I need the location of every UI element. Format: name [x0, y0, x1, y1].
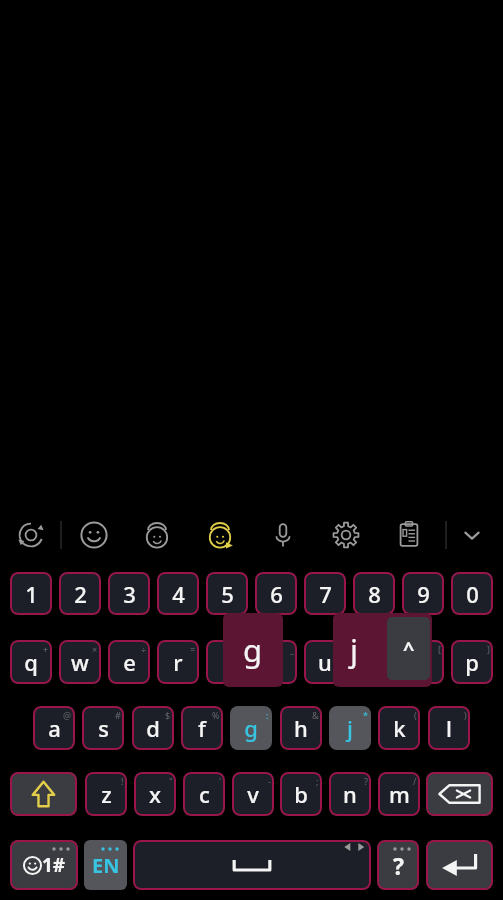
staticText: r: [173, 647, 183, 677]
button[interactable]: j: [329, 706, 371, 750]
button[interactable]: u: [304, 640, 346, 684]
button[interactable]: t: [206, 640, 248, 684]
button[interactable]: 8: [353, 572, 395, 615]
staticText: a: [48, 713, 61, 743]
staticText: k: [393, 713, 406, 743]
button[interactable]: Symbols and emoji: [10, 840, 78, 890]
button[interactable]: Voice input: [251, 508, 314, 562]
button[interactable]: ?: [377, 840, 419, 890]
button[interactable]: s: [82, 706, 124, 750]
staticText: ': [219, 775, 222, 787]
button[interactable]: a: [33, 706, 75, 750]
button[interactable]: q: [10, 640, 52, 684]
button[interactable]: o: [402, 640, 444, 684]
button[interactable]: Stickers: [125, 508, 188, 562]
staticText: 8: [368, 579, 381, 609]
button[interactable]: 7: [304, 572, 346, 615]
button[interactable]: Space: [133, 840, 371, 890]
staticText: z: [101, 779, 112, 809]
staticText: (: [414, 709, 417, 721]
staticText: j: [347, 713, 353, 743]
staticText: 5: [221, 579, 234, 609]
button[interactable]: k: [378, 706, 420, 750]
button[interactable]: 5: [206, 572, 248, 615]
staticText: %: [212, 709, 220, 721]
button[interactable]: f: [181, 706, 223, 750]
button[interactable]: x: [134, 772, 176, 816]
button[interactable]: p: [451, 640, 493, 684]
button[interactable]: 4: [157, 572, 199, 615]
button[interactable]: 3: [108, 572, 150, 615]
button[interactable]: h: [280, 706, 322, 750]
button[interactable]: y: [255, 640, 297, 684]
staticText: !: [121, 775, 124, 787]
staticText: #: [115, 709, 121, 721]
button[interactable]: Avatar: [188, 508, 251, 562]
button[interactable]: b: [280, 772, 322, 816]
button[interactable]: Settings: [314, 508, 377, 562]
staticText: _: [290, 643, 294, 655]
staticText: EN: [92, 852, 120, 879]
button[interactable]: Enter: [426, 840, 493, 890]
staticText: :: [266, 709, 269, 721]
button[interactable]: g: [230, 706, 272, 750]
staticText: d: [146, 713, 160, 743]
button[interactable]: c: [183, 772, 225, 816]
button[interactable]: EN: [84, 840, 127, 890]
staticText: -: [268, 775, 271, 787]
button[interactable]: r: [157, 640, 199, 684]
staticText: w: [71, 647, 89, 677]
staticText: ?: [364, 775, 368, 787]
button[interactable]: Clipboard: [377, 508, 440, 562]
staticText: v: [247, 779, 259, 809]
staticText: 1: [25, 579, 38, 609]
button[interactable]: z: [85, 772, 127, 816]
button[interactable]: l: [428, 706, 470, 750]
staticText: =: [190, 643, 196, 655]
staticText: c: [199, 779, 210, 809]
staticText: 2: [74, 579, 87, 609]
button[interactable]: Emoji: [62, 508, 125, 562]
button[interactable]: 0: [451, 572, 493, 615]
button[interactable]: e: [108, 640, 150, 684]
staticText: ]: [487, 643, 490, 655]
staticText: f: [198, 713, 206, 743]
staticText: ÷: [141, 643, 147, 655]
staticText: @: [63, 709, 72, 721]
button[interactable]: d: [132, 706, 174, 750]
button[interactable]: 6: [255, 572, 297, 615]
button[interactable]: 2: [59, 572, 101, 615]
staticText: 0: [466, 579, 479, 609]
button[interactable]: Hide keyboard: [440, 508, 503, 562]
staticText: m: [389, 779, 410, 809]
button[interactable]: n: [329, 772, 371, 816]
button[interactable]: w: [59, 640, 101, 684]
staticText: 4: [172, 579, 185, 609]
staticText: ): [464, 709, 467, 721]
button[interactable]: 9: [402, 572, 444, 615]
button[interactable]: v: [232, 772, 274, 816]
staticText: n: [343, 779, 357, 809]
staticText: h: [294, 713, 308, 743]
staticText: b: [294, 779, 308, 809]
button[interactable]: i: [353, 640, 395, 684]
button[interactable]: Translate: [0, 508, 62, 562]
staticText: ^: [403, 635, 415, 662]
staticText: &: [312, 709, 319, 721]
button[interactable]: Shift: [10, 772, 77, 816]
staticText: 9: [417, 579, 430, 609]
button[interactable]: 1: [10, 572, 52, 615]
staticText: 1#: [42, 852, 66, 878]
staticText: $: [165, 709, 171, 721]
staticText: ;: [316, 775, 319, 787]
staticText: ?: [393, 850, 404, 881]
button[interactable]: m: [378, 772, 420, 816]
staticText: /: [413, 775, 417, 787]
staticText: x: [149, 779, 161, 809]
button[interactable]: Backspace: [426, 772, 493, 816]
staticText: e: [123, 647, 136, 677]
